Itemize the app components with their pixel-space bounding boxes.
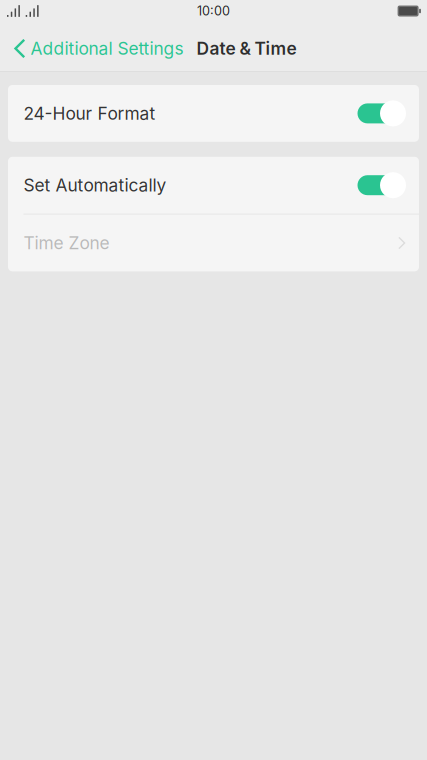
staticText: 24-Hour Format bbox=[23, 103, 155, 124]
staticText: Set Automatically bbox=[23, 175, 166, 196]
staticText: Time Zone bbox=[23, 232, 109, 253]
button[interactable]: Time Zone bbox=[8, 215, 419, 271]
button[interactable]: Set Automatically bbox=[8, 157, 419, 214]
staticText: Date & Time bbox=[197, 38, 297, 59]
button[interactable]: 24-Hour Format bbox=[8, 85, 419, 142]
staticText: 10:00 bbox=[197, 3, 230, 19]
staticText: Additional Settings bbox=[31, 38, 184, 59]
button[interactable]: Additional Settings bbox=[0, 26, 197, 71]
